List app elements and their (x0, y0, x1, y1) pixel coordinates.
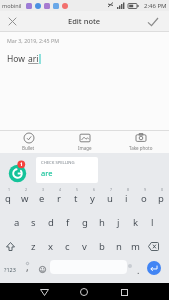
button[interactable]: x (42, 234, 59, 258)
staticText: 7 (110, 187, 113, 192)
button[interactable]: l (144, 210, 161, 234)
staticText: ari (28, 53, 39, 65)
button[interactable]: m (127, 234, 144, 258)
staticText: How (7, 53, 28, 65)
staticText: 1 (8, 187, 11, 192)
staticText: l (151, 216, 154, 229)
staticText: ?123 (4, 266, 16, 273)
button[interactable]: z (25, 234, 42, 258)
staticText: 9 (144, 187, 147, 192)
button[interactable]: Bullet (0, 131, 57, 153)
staticText: s (31, 216, 36, 229)
button[interactable]: CHECK SPELLING (36, 157, 98, 183)
button[interactable]: , (20, 258, 35, 280)
button[interactable]: w (16, 186, 33, 210)
staticText: o (141, 192, 147, 205)
staticText: 3 (42, 187, 45, 192)
staticText: h (99, 216, 105, 229)
staticText: , (26, 260, 29, 274)
button[interactable]: Image (57, 131, 113, 153)
button[interactable]: h (93, 210, 110, 234)
staticText: Edit note (68, 16, 101, 26)
staticText: r (57, 192, 61, 205)
button[interactable]: b (93, 234, 110, 258)
staticText: 8 (127, 187, 130, 192)
button[interactable]: Take photo (113, 131, 169, 153)
button[interactable]: f (59, 210, 76, 234)
button[interactable]: p (152, 186, 169, 210)
button[interactable]: . (133, 258, 144, 280)
staticText: Mar 3, 2019, 2:45 PM (7, 37, 59, 44)
button[interactable]: c (59, 234, 76, 258)
staticText: z (31, 240, 36, 253)
button[interactable]: e (33, 186, 50, 210)
staticText: 5 (76, 187, 79, 192)
button[interactable]: o (135, 186, 152, 210)
staticText: d (48, 216, 54, 229)
staticText: Bullet (22, 145, 35, 151)
staticText: Take photo (129, 145, 153, 151)
button[interactable]: u (101, 186, 118, 210)
staticText: a (14, 216, 20, 229)
staticText: u (107, 192, 113, 205)
staticText: j (117, 216, 120, 229)
staticText: Image (78, 145, 92, 151)
staticText: e (39, 192, 45, 205)
button[interactable] (1, 234, 19, 258)
button[interactable] (147, 261, 161, 275)
staticText: g (82, 216, 88, 229)
staticText: p (158, 192, 164, 205)
button[interactable]: a (8, 210, 25, 234)
staticText: are (41, 168, 53, 178)
button[interactable]: r (50, 186, 67, 210)
staticText: b (99, 240, 105, 253)
button[interactable]: d (42, 210, 59, 234)
button[interactable] (144, 234, 162, 258)
button[interactable]: y (84, 186, 101, 210)
button[interactable]: s (25, 210, 42, 234)
staticText: k (133, 216, 139, 229)
staticText: x (48, 240, 54, 253)
staticText: 2:46 PM (144, 2, 167, 10)
staticText: m (131, 240, 140, 253)
staticText: 2 (25, 187, 28, 192)
button[interactable] (116, 284, 132, 300)
button[interactable]: g (76, 210, 93, 234)
staticText: q (5, 192, 11, 205)
staticText: t (74, 192, 78, 205)
button[interactable]: t (67, 186, 84, 210)
staticText: 6 (93, 187, 96, 192)
staticText: 0 (161, 187, 164, 192)
staticText: y (90, 192, 95, 205)
staticText: v (82, 240, 87, 253)
button[interactable] (36, 258, 49, 280)
button[interactable] (6, 15, 18, 27)
button[interactable]: ?123 (1, 258, 19, 280)
button[interactable]: i (118, 186, 135, 210)
staticText: mobinil (2, 2, 22, 9)
staticText: CHECK SPELLING (41, 160, 75, 166)
staticText: f (66, 216, 70, 229)
button[interactable] (36, 284, 52, 300)
button[interactable]: n (110, 234, 127, 258)
staticText: i (125, 192, 128, 205)
staticText: . (137, 264, 140, 276)
button[interactable]: q (0, 186, 16, 210)
button[interactable] (146, 15, 159, 28)
staticText: n (116, 240, 122, 253)
staticText: w (21, 192, 29, 205)
button[interactable]: v (76, 234, 93, 258)
button[interactable] (7, 160, 33, 186)
button[interactable]: j (110, 210, 127, 234)
button[interactable] (76, 284, 92, 300)
staticText: c (65, 240, 70, 253)
staticText: 4 (59, 187, 62, 192)
button[interactable]: k (127, 210, 144, 234)
